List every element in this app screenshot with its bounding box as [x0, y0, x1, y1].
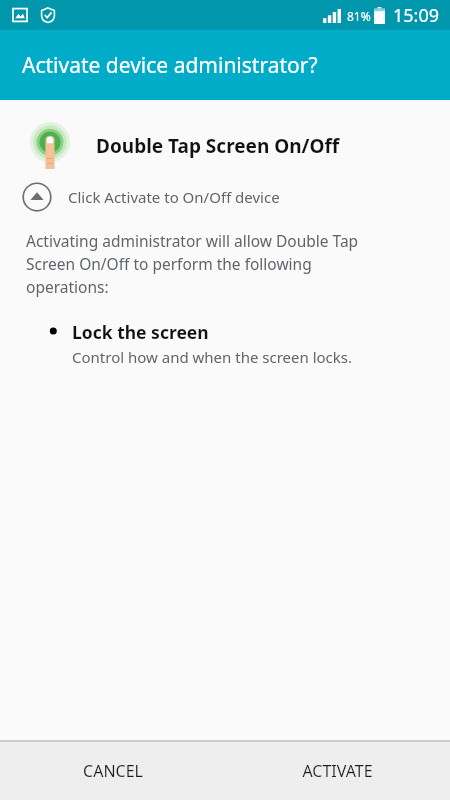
staticText: Control how and when the screen locks. — [72, 347, 352, 367]
button[interactable]: CANCEL — [0, 742, 225, 800]
staticText: ACTIVATE — [302, 760, 373, 782]
button[interactable]: Collapse details — [22, 182, 434, 212]
other: Collapse details — [22, 182, 52, 212]
button[interactable]: ACTIVATE — [225, 742, 450, 800]
staticText: Lock the screen — [72, 320, 209, 344]
staticText: Click Activate to On/Off device — [68, 187, 280, 207]
staticText: CANCEL — [83, 760, 143, 782]
staticText: 15:09 — [393, 3, 440, 28]
staticText: Double Tap Screen On/Off — [96, 133, 340, 159]
staticText: Activate device administrator? — [22, 51, 318, 80]
staticText: 81% — [347, 8, 371, 24]
staticText: Activating administrator will allow Doub… — [26, 230, 359, 298]
